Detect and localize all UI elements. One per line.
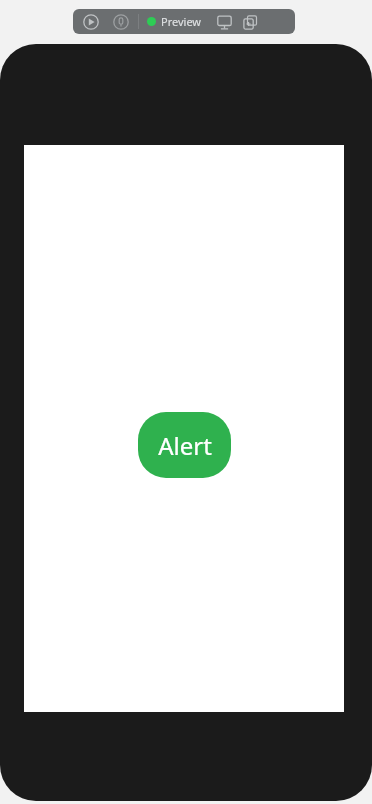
staticText: Preview	[161, 14, 202, 29]
staticText: Alert	[158, 429, 212, 462]
button[interactable]: Interactive preview	[111, 12, 131, 32]
button[interactable]: Alert	[138, 412, 231, 478]
button[interactable]: Run preview	[81, 12, 101, 32]
button[interactable]: Show on device	[214, 12, 234, 32]
button[interactable]: Add preview	[240, 12, 260, 32]
